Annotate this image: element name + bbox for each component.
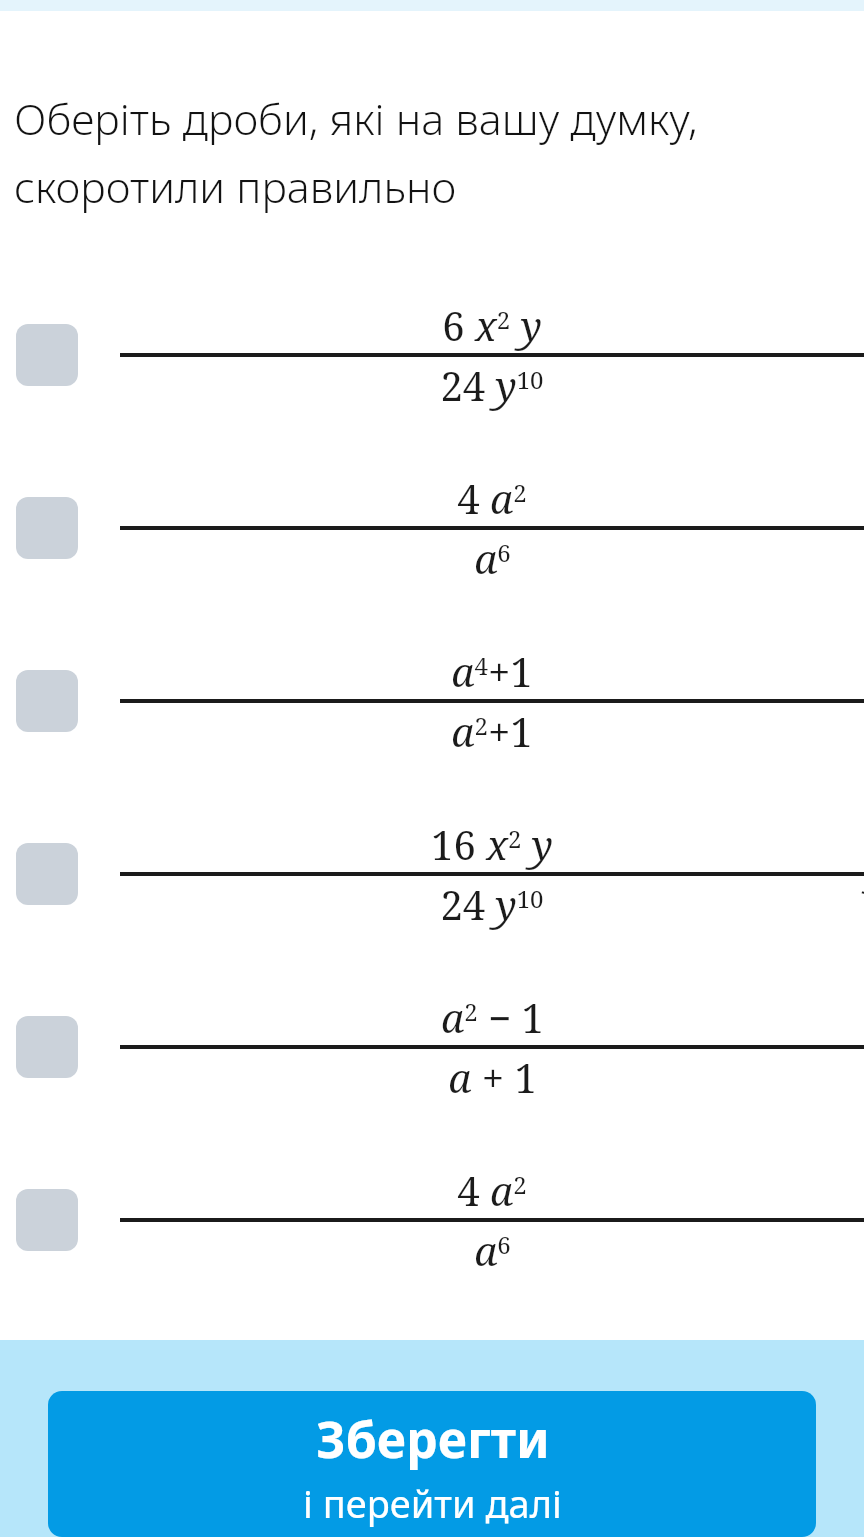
staticText: 4 a2 xyxy=(457,1163,527,1217)
staticText: і перейти далі xyxy=(303,1477,562,1529)
staticText: Зберегти xyxy=(316,1405,550,1473)
button[interactable]: 4 a2 xyxy=(0,441,864,614)
button[interactable]: 16 x2 y xyxy=(0,787,864,960)
staticText: a2+1 xyxy=(451,704,533,758)
staticText: Оберіть дроби, які на вашу думку, скорот… xyxy=(14,89,860,216)
staticText: a6 xyxy=(474,1223,511,1277)
button[interactable]: 4 a2 xyxy=(0,1133,864,1306)
staticText: a6 xyxy=(474,531,511,585)
staticText: a + 1 xyxy=(448,1050,537,1104)
staticText: a4+1 xyxy=(451,644,533,698)
staticText: 4 a2 xyxy=(457,471,527,525)
staticText: 6 x2 y xyxy=(442,298,542,352)
button[interactable]: a2 − 1 xyxy=(0,960,864,1133)
button[interactable]: a4+1 xyxy=(0,614,864,787)
staticText: 24 y10 xyxy=(440,358,544,412)
button[interactable]: 6 x2 y xyxy=(0,268,864,441)
staticText: 24 y10 xyxy=(440,877,544,931)
staticText: a2 − 1 xyxy=(441,990,544,1044)
staticText: 16 x2 y xyxy=(431,817,553,871)
button[interactable]: Зберегти xyxy=(48,1391,816,1537)
